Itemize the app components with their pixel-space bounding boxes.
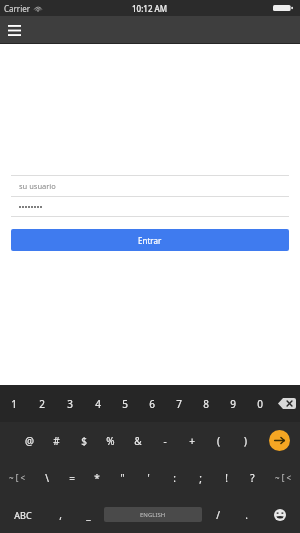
- staticText: -: [163, 434, 167, 448]
- staticText: ?: [250, 471, 255, 485]
- staticText: su usuario: [19, 181, 56, 191]
- button[interactable]: &: [124, 422, 151, 459]
- staticText: :: [173, 471, 176, 485]
- button[interactable]: ~ [ <: [0, 459, 34, 496]
- button[interactable]: 6: [138, 385, 165, 422]
- staticText: _: [86, 508, 91, 522]
- staticText: ": [120, 471, 125, 485]
- button[interactable]: .: [232, 496, 260, 533]
- button[interactable]: _: [74, 496, 102, 533]
- staticText: $: [81, 434, 87, 448]
- staticText: @: [25, 434, 34, 448]
- button[interactable]: 9: [219, 385, 246, 422]
- button[interactable]: ,: [46, 496, 74, 533]
- staticText: ;: [199, 471, 202, 485]
- button[interactable]: (: [205, 422, 232, 459]
- button[interactable]: !: [213, 459, 239, 496]
- staticText: 8: [203, 397, 209, 411]
- staticText: 5: [122, 397, 128, 411]
- button[interactable]: /: [204, 496, 232, 533]
- button[interactable]: *: [84, 459, 109, 496]
- staticText: .: [245, 508, 248, 522]
- staticText: ': [147, 471, 150, 485]
- staticText: 3: [67, 397, 73, 411]
- staticText: /: [216, 508, 220, 522]
- staticText: +: [189, 434, 195, 448]
- button[interactable]: +: [178, 422, 205, 459]
- button[interactable]: %: [97, 422, 124, 459]
- button[interactable]: Entrar: [11, 229, 289, 251]
- button[interactable]: 2: [28, 385, 56, 422]
- staticText: 2: [39, 397, 45, 411]
- staticText: #: [53, 434, 60, 448]
- staticText: ~ [ <: [275, 472, 291, 483]
- button[interactable]: #: [43, 422, 70, 459]
- staticText: \: [45, 471, 49, 485]
- staticText: %: [106, 434, 115, 448]
- button[interactable]: 8: [192, 385, 219, 422]
- button[interactable]: 3: [56, 385, 84, 422]
- button[interactable]: 0: [246, 385, 273, 422]
- staticText: 0: [257, 397, 263, 411]
- button[interactable]: :: [161, 459, 187, 496]
- button[interactable]: =: [59, 459, 84, 496]
- button[interactable]: 4: [84, 385, 111, 422]
- button[interactable]: 7: [165, 385, 192, 422]
- staticText: 4: [95, 397, 101, 411]
- button[interactable]: ': [135, 459, 161, 496]
- button[interactable]: Emoji: [260, 496, 300, 533]
- staticText: 10:12 AM: [132, 3, 168, 14]
- staticText: =: [69, 471, 75, 485]
- staticText: Carrier: [4, 3, 31, 14]
- button[interactable]: $: [70, 422, 97, 459]
- staticText: 9: [230, 397, 236, 411]
- button[interactable]: Backspace: [273, 385, 300, 422]
- staticText: *: [94, 471, 100, 485]
- staticText: 6: [149, 397, 155, 411]
- button[interactable]: su usuario: [11, 175, 289, 196]
- button[interactable]: ": [109, 459, 135, 496]
- staticText: ,: [59, 508, 62, 522]
- staticText: !: [225, 471, 228, 485]
- button[interactable]: @: [15, 422, 43, 459]
- button[interactable]: Menu: [3, 19, 25, 41]
- staticText: ABC: [14, 509, 32, 521]
- staticText: ): [244, 434, 247, 448]
- button[interactable]: ): [232, 422, 259, 459]
- staticText: ~ [ <: [9, 472, 25, 483]
- staticText: Entrar: [138, 235, 162, 246]
- staticText: (: [217, 434, 220, 448]
- button[interactable]: [11, 196, 289, 217]
- button[interactable]: Enter: [259, 422, 300, 459]
- button[interactable]: 1: [0, 385, 28, 422]
- button[interactable]: ABC: [0, 496, 46, 533]
- button[interactable]: \: [34, 459, 59, 496]
- staticText: 7: [176, 397, 182, 411]
- button[interactable]: ~ [ <: [265, 459, 300, 496]
- button[interactable]: ENGLISH: [104, 507, 202, 522]
- button[interactable]: 5: [111, 385, 138, 422]
- button[interactable]: -: [151, 422, 178, 459]
- button[interactable]: ?: [239, 459, 265, 496]
- staticText: 1: [11, 397, 17, 411]
- button[interactable]: ;: [187, 459, 213, 496]
- staticText: ENGLISH: [140, 511, 166, 519]
- staticText: &: [134, 434, 142, 448]
